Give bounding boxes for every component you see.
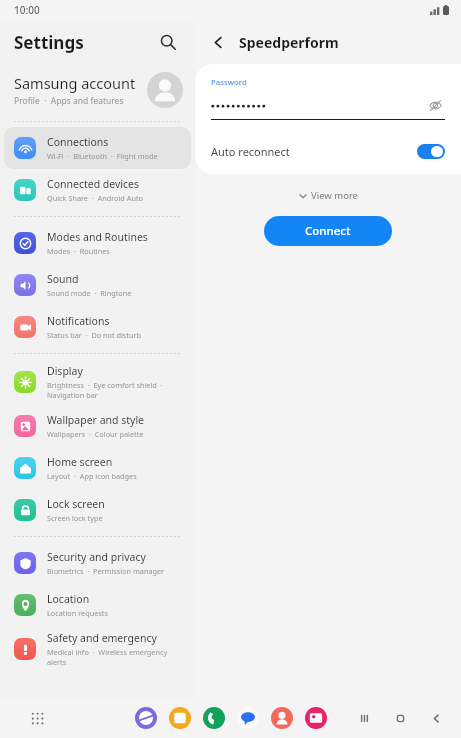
button[interactable]: Recents (353, 707, 375, 729)
button[interactable]: Connected devices (4, 169, 191, 211)
button[interactable]: Back (203, 27, 233, 57)
staticText: Biometrics · Permission manager (47, 566, 165, 576)
staticText: Brightness · Eye comfort shield · (47, 380, 163, 390)
staticText: Samsung account (14, 73, 136, 93)
staticText: Connect (305, 223, 351, 239)
staticText: alerts (47, 657, 67, 667)
staticText: Connections (47, 135, 109, 149)
staticText: Notifications (47, 314, 110, 328)
staticText: Layout · App icon badges (47, 471, 137, 481)
button[interactable]: gallery (305, 707, 327, 729)
staticText: Safety and emergency (47, 631, 157, 645)
button[interactable]: Connect (264, 216, 392, 246)
staticText: Modes · Routines (47, 246, 110, 256)
button[interactable]: phone (203, 707, 225, 729)
staticText: Auto reconnect (211, 144, 417, 159)
staticText: Wi-Fi · Bluetooth · Flight mode (47, 151, 158, 161)
staticText: Speedperform (239, 33, 339, 52)
button[interactable]: messages (237, 707, 259, 729)
button[interactable]: Notifications (4, 306, 191, 348)
staticText: Status bar · Do not disturb (47, 330, 142, 340)
staticText: Quick Share · Android Auto (47, 193, 143, 203)
staticText: Password (211, 77, 247, 88)
button[interactable]: Safety and emergency (4, 626, 191, 672)
button[interactable]: Show password (425, 95, 445, 115)
button[interactable]: Modes and Routines (4, 222, 191, 264)
staticText: Navigation bar (47, 390, 98, 400)
staticText: 10:00 (14, 3, 40, 17)
button[interactable]: Home screen (4, 447, 191, 489)
staticText: Sound (47, 272, 79, 286)
staticText: Wallpapers · Colour palette (47, 429, 144, 439)
staticText: Home screen (47, 455, 113, 469)
button[interactable]: Connections (4, 127, 191, 169)
staticText: Display (47, 364, 83, 378)
button[interactable]: internet (135, 707, 157, 729)
staticText: Sound mode · Ringtone (47, 288, 132, 298)
staticText: Profile · Apps and features (14, 95, 124, 107)
button[interactable]: View more (291, 186, 366, 205)
staticText: View more (311, 189, 358, 202)
button[interactable]: Samsung account (0, 64, 195, 116)
button[interactable]: contacts (271, 707, 293, 729)
staticText: Connected devices (47, 177, 140, 191)
staticText: Security and privacy (47, 550, 146, 564)
staticText: Wallpaper and style (47, 413, 145, 427)
button[interactable]: Apps (24, 705, 50, 731)
button[interactable]: Lock screen (4, 489, 191, 531)
staticText: Modes and Routines (47, 230, 148, 244)
button[interactable]: Back (425, 707, 447, 729)
button[interactable]: files (169, 707, 191, 729)
staticText: Location (47, 592, 90, 606)
staticText: Screen lock type (47, 513, 103, 523)
button[interactable]: Location (4, 584, 191, 626)
button[interactable]: Auto reconnect (195, 134, 461, 168)
button[interactable]: Sound (4, 264, 191, 306)
button[interactable]: Security and privacy (4, 542, 191, 584)
button[interactable]: Wallpaper and style (4, 405, 191, 447)
button[interactable]: Search (151, 25, 185, 59)
staticText: Medical info · Wireless emergency (47, 647, 168, 657)
staticText: Location requests (47, 608, 108, 618)
staticText: Lock screen (47, 497, 105, 511)
staticText: Settings (14, 31, 84, 54)
button[interactable]: Display (4, 359, 191, 405)
button[interactable]: Home (389, 707, 411, 729)
